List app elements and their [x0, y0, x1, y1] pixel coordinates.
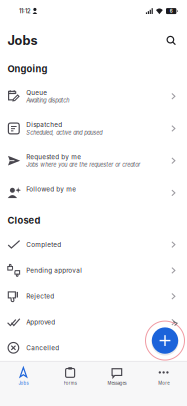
- button[interactable]: Followed by me: [0, 177, 187, 209]
- button[interactable]: Completed: [0, 232, 187, 258]
- staticText: Jobs where you are the requester or crea…: [26, 161, 140, 168]
- button[interactable]: Pending approval: [0, 257, 187, 283]
- staticText: Closed: [7, 215, 40, 226]
- staticText: Completed: [26, 241, 61, 248]
- button[interactable]: Rejected: [0, 283, 187, 309]
- staticText: Dispatched: [26, 121, 62, 129]
- button[interactable]: More: [140, 361, 187, 406]
- staticText: Awaiting dispatch: [26, 97, 69, 104]
- staticText: Jobs: [18, 380, 28, 386]
- staticText: Cancelled: [26, 344, 59, 352]
- staticText: More: [158, 380, 169, 386]
- button[interactable]: Dispatched: [0, 112, 187, 145]
- button[interactable]: Cancelled: [0, 335, 187, 361]
- staticText: Jobs: [8, 33, 38, 48]
- button[interactable]: Search: [160, 29, 182, 51]
- staticText: Queue: [26, 89, 47, 96]
- staticText: Scheduled, active and paused: [26, 129, 102, 136]
- staticText: Rejected: [26, 292, 54, 300]
- staticText: Messages: [107, 380, 126, 386]
- button[interactable]: Forms: [47, 361, 94, 406]
- button[interactable]: Messages: [93, 361, 140, 406]
- staticText: Requested by me: [26, 153, 81, 161]
- staticText: Ongoing: [7, 63, 47, 74]
- staticText: 11:12: [19, 7, 31, 15]
- staticText: 6: [170, 8, 173, 14]
- staticText: Forms: [64, 380, 77, 386]
- button[interactable]: Queue: [0, 80, 187, 112]
- button[interactable]: Jobs: [0, 361, 47, 406]
- button[interactable]: Requested by me: [0, 145, 187, 177]
- button[interactable]: Approved: [0, 309, 187, 335]
- staticText: Approved: [26, 318, 55, 326]
- staticText: Followed by me: [26, 185, 76, 193]
- staticText: Pending approval: [26, 267, 82, 274]
